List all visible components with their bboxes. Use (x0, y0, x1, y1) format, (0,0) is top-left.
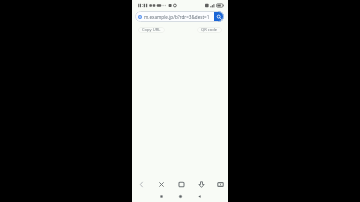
button[interactable]: Back (135, 178, 147, 190)
staticText: QR code (201, 27, 218, 33)
staticText: Copy URL (142, 27, 161, 33)
button[interactable]: Search (214, 11, 224, 22)
button[interactable]: Home (175, 191, 185, 201)
button[interactable]: Tabs (214, 178, 226, 190)
button[interactable]: QR code (197, 27, 222, 33)
button[interactable]: Recents (156, 191, 166, 201)
button[interactable]: m.example.jp/b?rdr=3&dest=1 (135, 11, 224, 22)
button[interactable]: Home (175, 178, 187, 190)
staticText: m.example.jp/b?rdr=3&dest=1 (144, 14, 210, 20)
button[interactable]: Stop loading (155, 178, 167, 190)
button[interactable]: Back (194, 191, 204, 201)
button[interactable]: Downloads (195, 178, 207, 190)
button[interactable]: Copy URL (138, 27, 165, 33)
